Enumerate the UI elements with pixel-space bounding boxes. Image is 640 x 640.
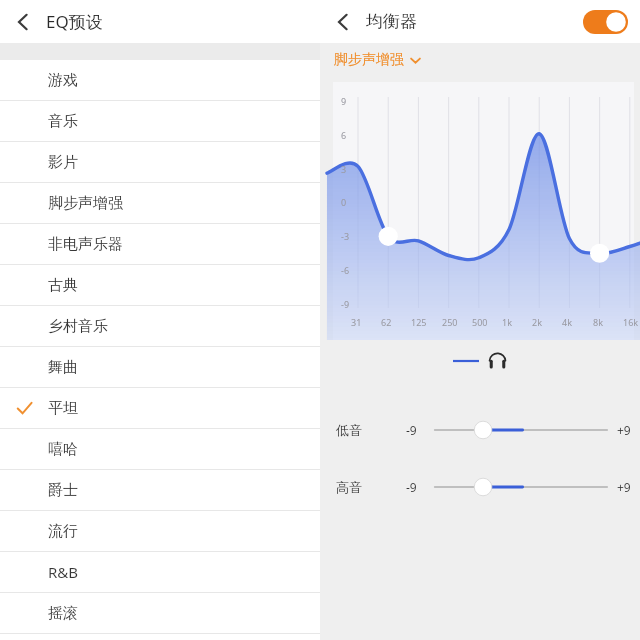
staticText: 2k xyxy=(532,316,542,328)
staticText: 16k xyxy=(623,316,639,328)
staticText: -9 xyxy=(406,479,417,495)
staticText: 脚步声增强 xyxy=(334,51,404,69)
staticText: 4k xyxy=(562,316,572,328)
button[interactable]: 脚步声增强 xyxy=(0,183,320,223)
staticText: 0 xyxy=(341,196,347,208)
staticText: 摇滚 xyxy=(48,604,78,623)
button[interactable]: 高音 xyxy=(320,472,640,502)
staticText: 影片 xyxy=(48,153,78,172)
staticText: 舞曲 xyxy=(48,358,78,377)
button[interactable]: 摇滚 xyxy=(0,593,320,633)
button[interactable]: Back xyxy=(320,0,366,43)
staticText: 古典 xyxy=(48,276,78,295)
button[interactable]: 非电声乐器 xyxy=(0,224,320,264)
button[interactable]: 低音 xyxy=(320,415,640,445)
staticText: +9 xyxy=(617,422,631,438)
staticText: 均衡器 xyxy=(366,11,417,32)
staticText: 高音 xyxy=(336,479,362,495)
staticText: 乡村音乐 xyxy=(48,317,108,336)
staticText: 3 xyxy=(341,163,347,175)
button[interactable]: Equalizer toggle xyxy=(582,9,628,35)
staticText: 500 xyxy=(472,316,488,328)
staticText: -3 xyxy=(341,230,350,242)
button[interactable]: 流行 xyxy=(0,511,320,551)
staticText: 嘻哈 xyxy=(48,440,78,459)
staticText: 62 xyxy=(381,316,392,328)
button[interactable]: 舞曲 xyxy=(0,347,320,387)
button[interactable]: 游戏 xyxy=(0,60,320,100)
staticText: -9 xyxy=(406,422,417,438)
staticText: 爵士 xyxy=(48,481,78,500)
staticText: 平坦 xyxy=(48,399,78,418)
button[interactable]: 影片 xyxy=(0,142,320,182)
staticText: 6 xyxy=(341,129,347,141)
button[interactable]: 平坦 xyxy=(0,388,320,428)
staticText: -6 xyxy=(341,264,350,276)
staticText: 流行 xyxy=(48,522,78,541)
staticText: 游戏 xyxy=(48,71,78,90)
button[interactable]: 爵士 xyxy=(0,470,320,510)
button[interactable]: 嘻哈 xyxy=(0,429,320,469)
button[interactable]: Back xyxy=(0,0,46,43)
staticText: 125 xyxy=(411,316,427,328)
button[interactable]: R&B xyxy=(0,552,320,592)
staticText: -9 xyxy=(341,298,350,310)
staticText: 音乐 xyxy=(48,112,78,131)
staticText: EQ预设 xyxy=(46,10,103,33)
button[interactable]: 音乐 xyxy=(0,101,320,141)
staticText: R&B xyxy=(48,562,79,582)
button[interactable]: 乡村音乐 xyxy=(0,306,320,346)
button[interactable]: 古典 xyxy=(0,265,320,305)
staticText: 脚步声增强 xyxy=(48,194,123,213)
staticText: 低音 xyxy=(336,422,362,438)
staticText: 8k xyxy=(593,316,603,328)
button[interactable]: 脚步声增强 xyxy=(334,43,640,77)
staticText: 非电声乐器 xyxy=(48,235,123,254)
staticText: 250 xyxy=(442,316,458,328)
staticText: +9 xyxy=(617,479,631,495)
staticText: 1k xyxy=(502,316,512,328)
staticText: 31 xyxy=(351,316,362,328)
staticText: 9 xyxy=(341,95,347,107)
